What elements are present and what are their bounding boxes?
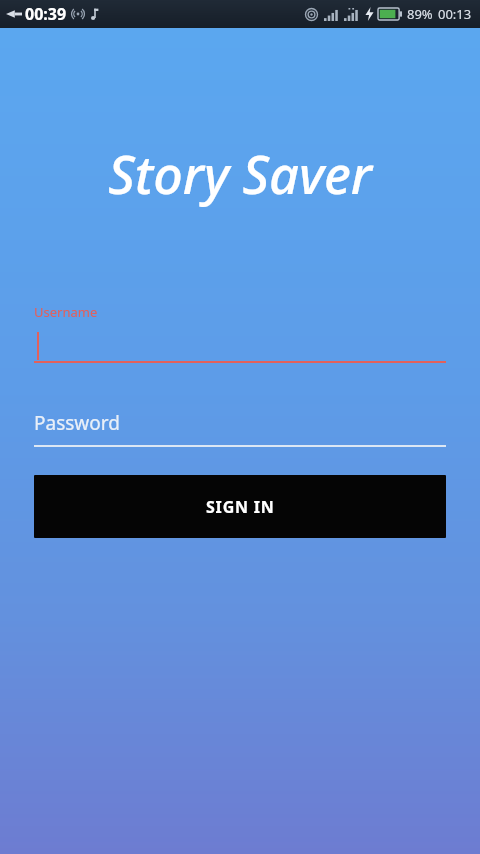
button[interactable]: Username (34, 303, 446, 363)
staticText: 89% (407, 5, 433, 23)
staticText: 00:13 (438, 5, 472, 23)
staticText: Password (34, 410, 120, 436)
staticText: 00:39 (25, 3, 67, 25)
staticText: SIGN IN (206, 496, 275, 518)
button[interactable]: SIGN IN (34, 475, 446, 538)
staticText: Username (34, 303, 98, 321)
button[interactable]: Password (34, 408, 446, 447)
staticText: Story Saver (108, 138, 372, 209)
